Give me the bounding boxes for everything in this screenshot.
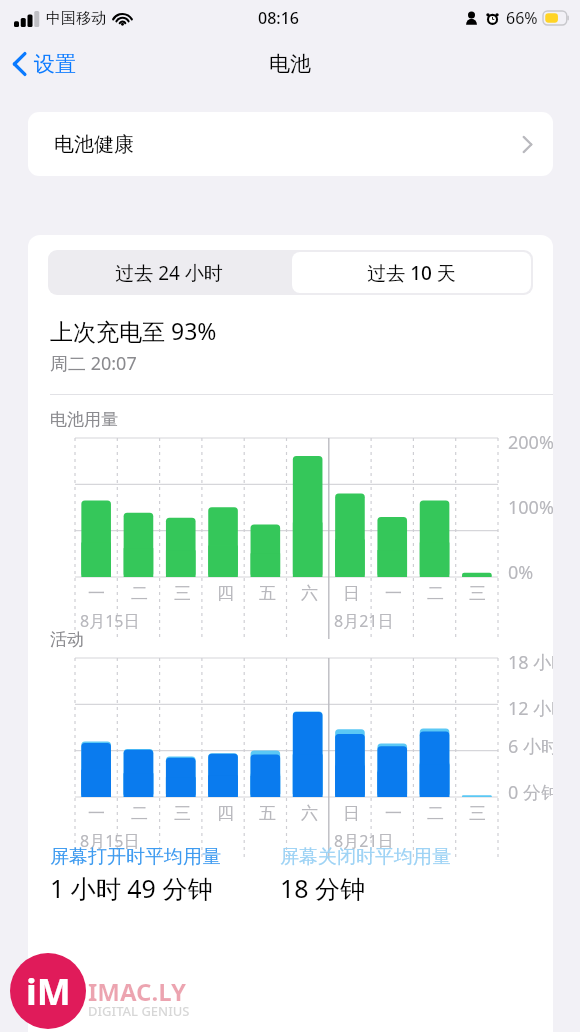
staticText: 8月15日 bbox=[80, 610, 140, 632]
staticText: 电池用量 bbox=[50, 409, 118, 430]
staticText: 屏幕打开时平均用量 bbox=[50, 845, 221, 869]
button[interactable]: 设置 bbox=[0, 45, 86, 83]
staticText: 二 bbox=[131, 583, 148, 604]
staticText: 过去 24 小时 bbox=[115, 260, 223, 286]
staticText: 日 bbox=[343, 583, 360, 604]
staticText: iM bbox=[26, 967, 71, 1016]
staticText: 一 bbox=[88, 583, 105, 604]
staticText: 一 bbox=[88, 803, 105, 824]
button[interactable]: 过去 24 小时 bbox=[48, 250, 290, 295]
staticText: 周二 20:07 bbox=[50, 351, 137, 376]
staticText: 18 分钟 bbox=[280, 871, 366, 905]
staticText: 一 bbox=[385, 803, 402, 824]
staticText: 六 bbox=[301, 803, 318, 824]
staticText: DIGITAL GENIUS bbox=[88, 1002, 190, 1020]
staticText: 屏幕关闭时平均用量 bbox=[280, 845, 451, 869]
staticText: 1 小时 49 分钟 bbox=[50, 871, 213, 905]
staticText: 一 bbox=[385, 583, 402, 604]
staticText: 8月15日 bbox=[80, 830, 140, 852]
staticText: 100% bbox=[508, 495, 553, 520]
staticText: 五 bbox=[259, 803, 276, 824]
staticText: 六 bbox=[301, 583, 318, 604]
staticText: 8月21日 bbox=[334, 610, 394, 632]
staticText: 二 bbox=[427, 803, 444, 824]
staticText: 活动 bbox=[50, 629, 84, 650]
staticText: 0 分钟 bbox=[508, 780, 553, 805]
staticText: 三 bbox=[174, 583, 191, 604]
staticText: 12 小时 bbox=[508, 696, 553, 721]
staticText: 过去 10 天 bbox=[367, 260, 456, 286]
staticText: 三 bbox=[174, 803, 191, 824]
staticText: 日 bbox=[343, 803, 360, 824]
staticText: 二 bbox=[427, 583, 444, 604]
staticText: 三 bbox=[469, 803, 486, 824]
staticText: 四 bbox=[217, 583, 234, 604]
staticText: 电池 bbox=[269, 51, 311, 77]
staticText: 电池健康 bbox=[54, 132, 134, 157]
staticText: 8月21日 bbox=[334, 830, 394, 852]
staticText: 三 bbox=[469, 583, 486, 604]
staticText: 18 小时 bbox=[508, 650, 553, 675]
staticText: 设置 bbox=[34, 51, 76, 77]
staticText: 上次充电至 93% bbox=[50, 315, 217, 346]
staticText: 08:16 bbox=[258, 7, 299, 29]
staticText: 200% bbox=[508, 430, 553, 455]
button[interactable]: 过去 10 天 bbox=[292, 252, 531, 293]
staticText: 二 bbox=[131, 803, 148, 824]
staticText: 0% bbox=[508, 560, 534, 585]
staticText: 66% bbox=[506, 7, 538, 29]
button[interactable]: 电池健康 bbox=[28, 112, 553, 176]
staticText: 6 小时 bbox=[508, 734, 553, 759]
staticText: 中国移动 bbox=[46, 9, 106, 28]
staticText: 五 bbox=[259, 583, 276, 604]
staticText: 四 bbox=[217, 803, 234, 824]
staticText: IMAC.LY bbox=[88, 975, 186, 1008]
